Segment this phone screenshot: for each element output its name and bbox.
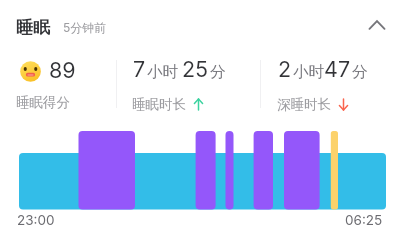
button[interactable]: 7 [125,52,255,110]
staticText: 89 [49,57,76,83]
staticText: 睡眠 [16,17,50,38]
button[interactable]: 2 [270,52,400,110]
staticText: 2 [278,56,292,82]
staticText: 小时 [147,62,178,82]
staticText: 深睡时长 [277,96,331,113]
staticText: 分 [210,62,226,82]
staticText: 5分钟前 [63,20,107,35]
button[interactable]: 睡眠 [16,17,107,38]
button[interactable]: Collapse [361,9,393,41]
staticText: 23:00 [17,212,55,228]
button[interactable]: 89 [8,50,114,110]
staticText: 25 [182,56,209,82]
staticText: 分 [352,62,368,82]
staticText: 睡眠得分 [16,94,70,111]
staticText: 47 [324,56,351,82]
staticText: 06:25 [345,212,383,228]
staticText: 7 [133,56,146,82]
staticText: 睡眠时长 [132,96,186,113]
staticText: 小时 [293,62,324,82]
